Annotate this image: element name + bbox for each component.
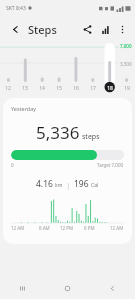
button[interactable]: Share [78, 20, 96, 38]
staticText: 13 [22, 85, 28, 92]
staticText: 7,000 [120, 43, 132, 49]
staticText: 12 PM [60, 225, 74, 231]
staticText: 6 PM [84, 225, 95, 231]
staticText: Yesterday [11, 105, 37, 112]
button[interactable]: Home [45, 277, 90, 299]
staticText: 19 [124, 85, 130, 92]
staticText: 12 AM [110, 225, 124, 231]
staticText: 5,336 [36, 121, 80, 144]
button[interactable]: Trends [96, 20, 114, 38]
staticText: SKT 8:43 [6, 5, 26, 12]
staticText: Target 7,000 [97, 162, 124, 168]
button[interactable]: More options [114, 21, 130, 37]
staticText: 12 [5, 85, 11, 92]
staticText: 17 [90, 85, 96, 92]
staticText: 6 AM [39, 225, 50, 231]
staticText: steps [82, 132, 100, 142]
button[interactable]: Back [90, 277, 135, 299]
staticText: 14 [39, 85, 45, 92]
staticText: 196 [74, 178, 89, 190]
staticText: km [55, 182, 63, 189]
staticText: 12 AM [11, 225, 25, 231]
button[interactable]: Yesterday [3, 98, 132, 244]
button[interactable]: Weekly steps chart [0, 42, 135, 94]
staticText: 0 [11, 162, 14, 168]
staticText: Cal [91, 182, 99, 189]
staticText: 4.16 [36, 178, 53, 190]
button[interactable]: Recents [0, 277, 45, 299]
staticText: 16 [73, 85, 79, 92]
staticText: 3,500 [120, 61, 132, 67]
button[interactable]: Back [5, 19, 25, 39]
staticText: Steps [28, 22, 57, 37]
staticText: 18 [107, 85, 113, 92]
staticText: 15 [56, 85, 62, 92]
